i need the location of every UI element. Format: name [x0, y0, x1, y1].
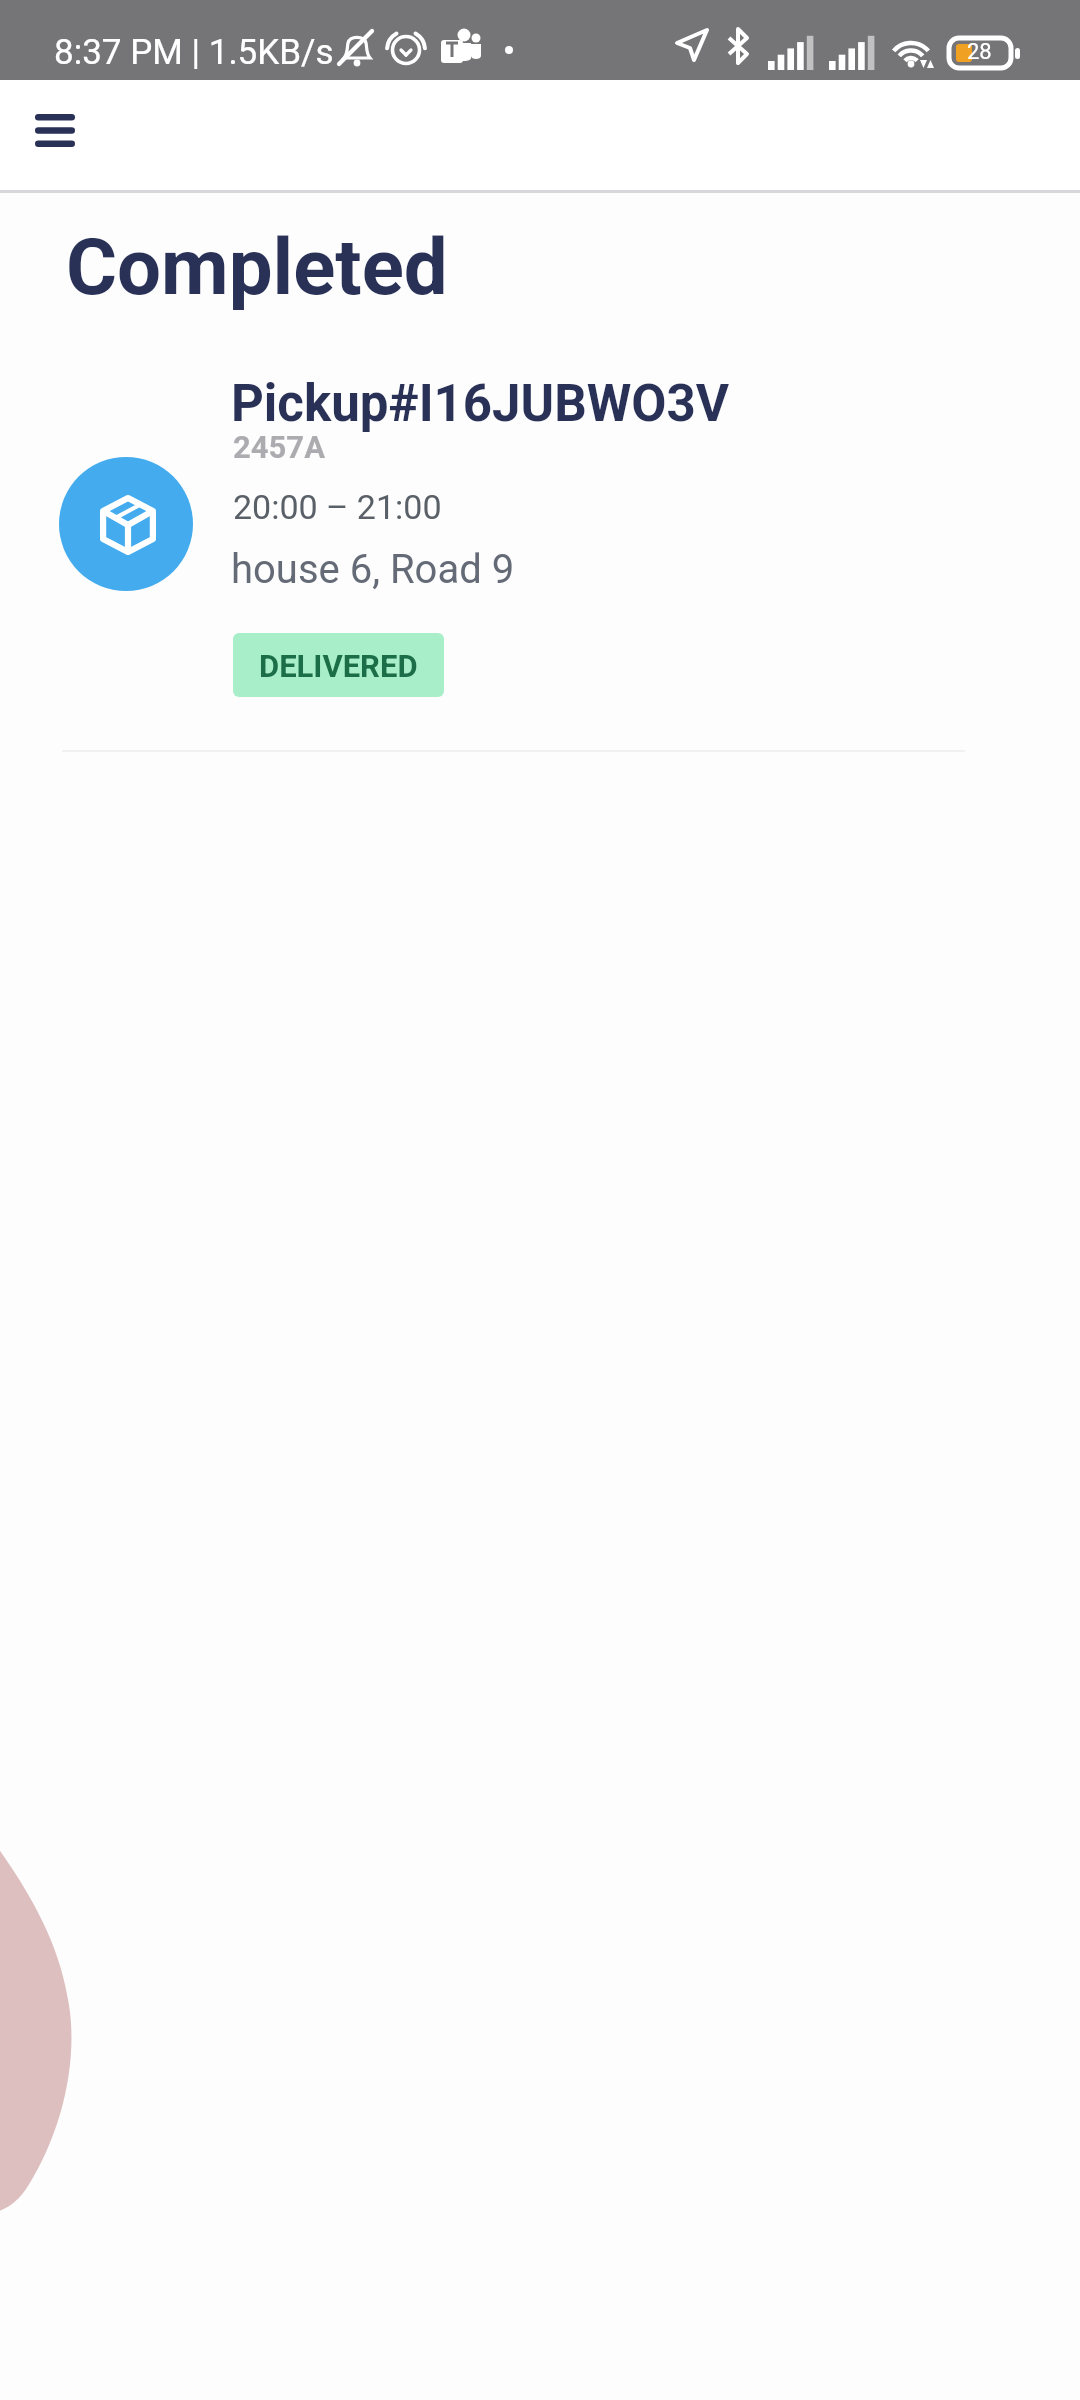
staticText: 8:37 PM | 1.5KB/s [54, 32, 334, 73]
staticText: 20:00 – 21:00 [233, 487, 442, 527]
staticText: DELIVERED [259, 648, 418, 684]
staticText: house 6, Road 9 [231, 546, 515, 593]
button[interactable]: Open navigation menu [10, 85, 100, 175]
staticText: 2457A [233, 429, 325, 465]
button[interactable]: Pickup#I16JUBWO3V [0, 340, 1080, 752]
staticText: Completed [66, 222, 448, 313]
staticText: 28 [967, 39, 992, 65]
staticText: Pickup#I16JUBWO3V [231, 374, 730, 434]
button[interactable]: DELIVERED [233, 633, 444, 697]
